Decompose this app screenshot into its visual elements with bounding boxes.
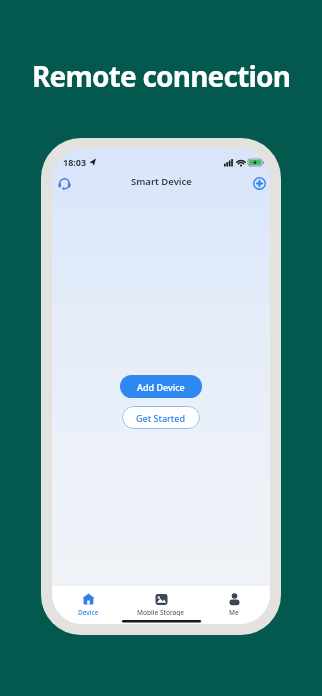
button[interactable]: Mobile Storage	[124, 586, 197, 616]
staticText: Add Device	[137, 381, 185, 393]
button[interactable]: Get Started	[122, 406, 200, 429]
button[interactable]	[248, 173, 270, 193]
staticText: Device	[78, 608, 99, 616]
staticText: Mobile Storage	[137, 608, 185, 616]
button[interactable]: Me	[197, 586, 270, 616]
staticText: Me	[229, 608, 239, 616]
staticText: 18:03	[63, 156, 87, 168]
staticText: Smart Device	[131, 175, 192, 188]
button[interactable]: Device	[52, 586, 124, 616]
button[interactable]	[54, 173, 74, 193]
staticText: Remote connection	[32, 57, 291, 95]
staticText: Get Started	[136, 412, 186, 424]
button[interactable]: Add Device	[120, 375, 202, 398]
